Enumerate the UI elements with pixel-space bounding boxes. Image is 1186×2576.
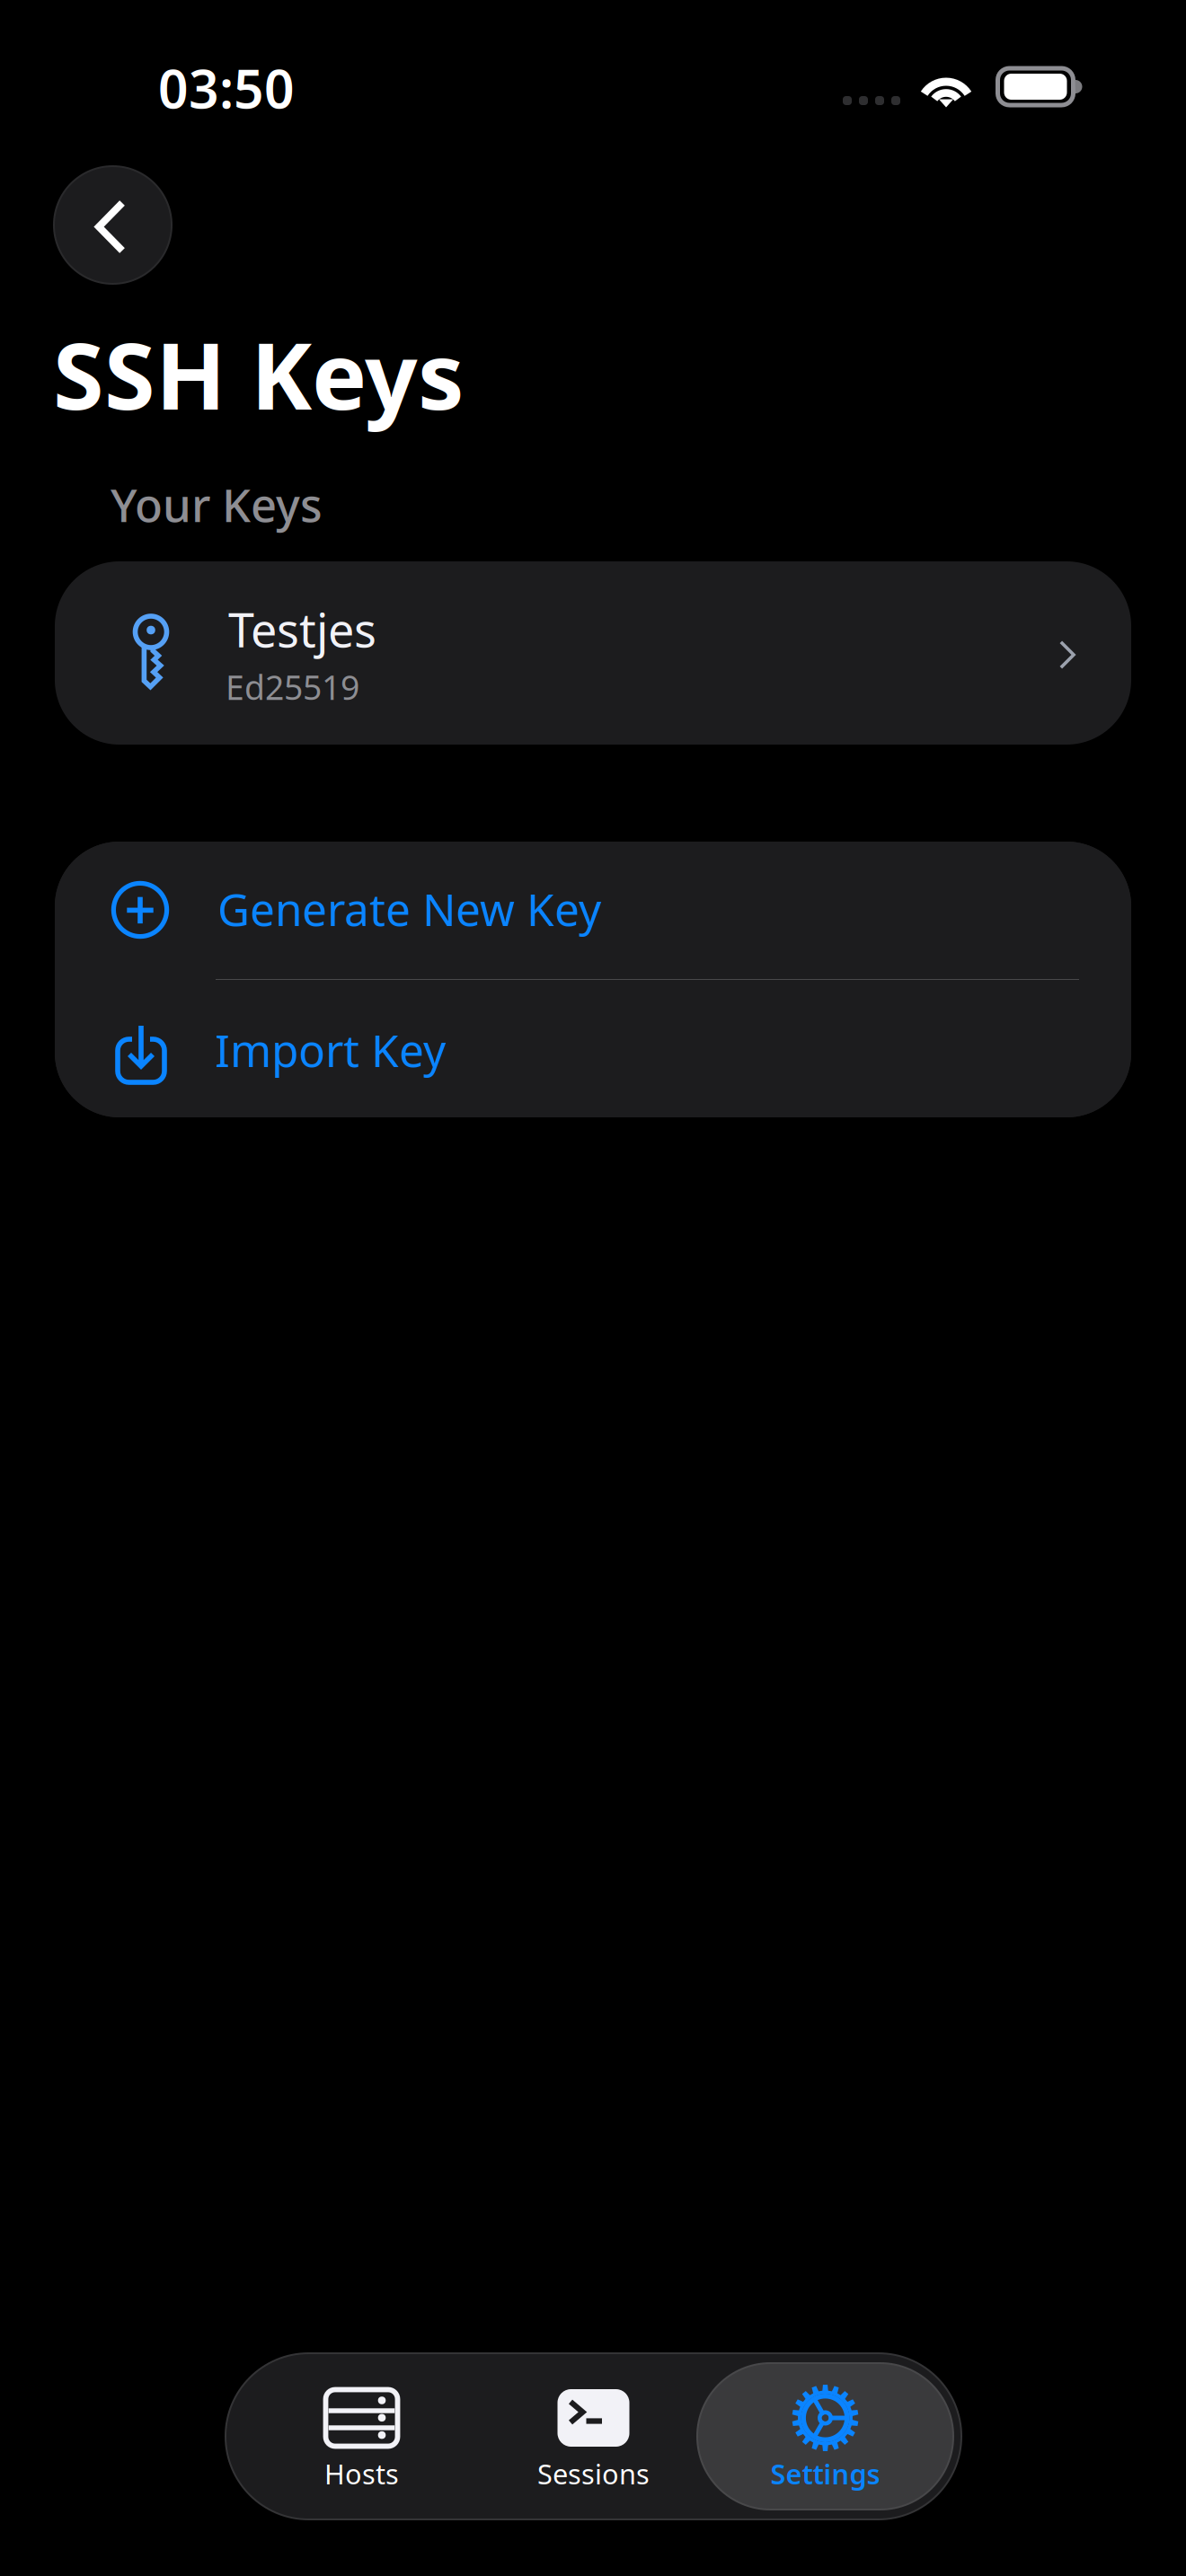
staticText: Generate New Key bbox=[217, 879, 601, 938]
staticText: Sessions bbox=[537, 2455, 650, 2492]
button[interactable]: Back bbox=[54, 166, 172, 284]
button[interactable]: Hosts bbox=[234, 2353, 490, 2519]
staticText: Hosts bbox=[324, 2455, 399, 2492]
button[interactable]: Settings bbox=[697, 2353, 953, 2519]
staticText: Your Keys bbox=[111, 474, 323, 535]
button[interactable]: Testjes bbox=[55, 561, 1131, 745]
button[interactable]: Sessions bbox=[465, 2353, 721, 2519]
staticText: SSH Keys bbox=[53, 313, 465, 435]
staticText: 03:50 bbox=[158, 53, 295, 123]
staticText: Settings bbox=[770, 2455, 880, 2492]
staticText: Testjes bbox=[228, 598, 376, 660]
staticText: Ed25519 bbox=[226, 665, 359, 709]
button[interactable]: Import Key bbox=[55, 980, 1131, 1117]
staticText: Import Key bbox=[215, 1020, 446, 1079]
button[interactable]: Generate New Key bbox=[55, 842, 1131, 978]
